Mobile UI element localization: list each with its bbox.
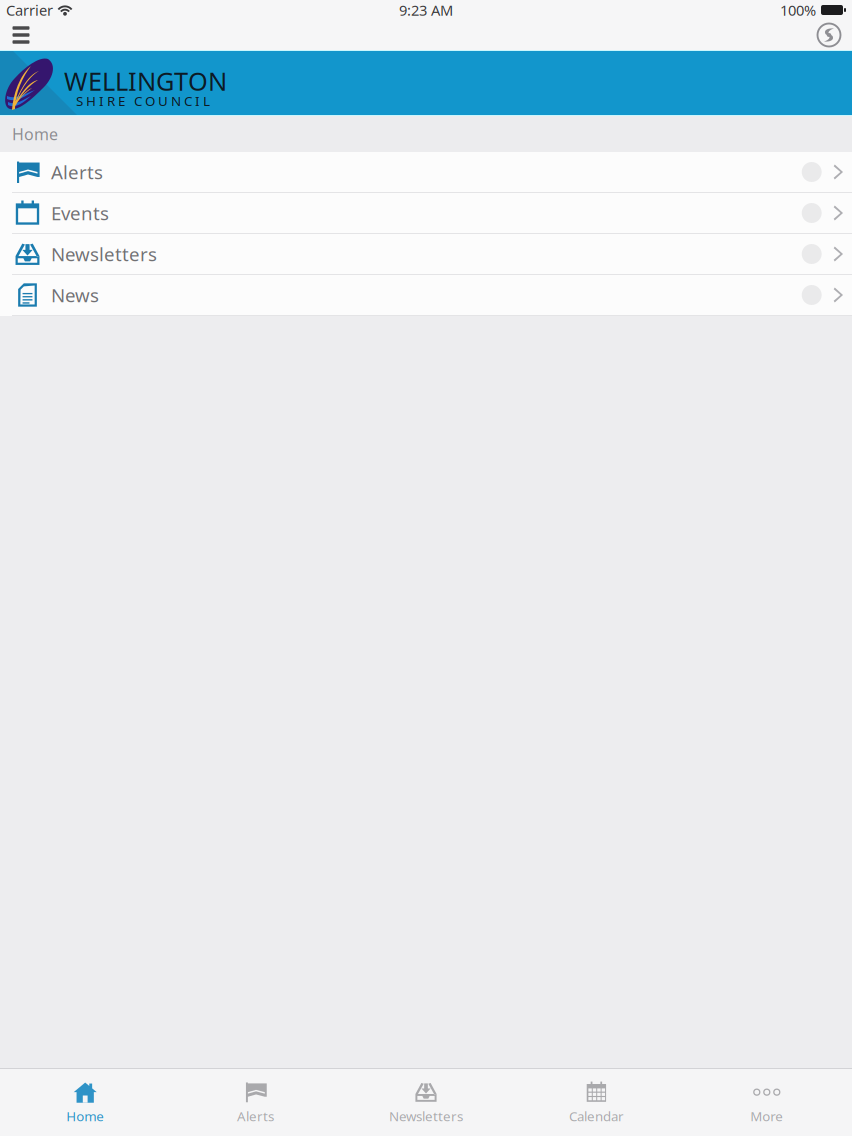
staticText: Calendar bbox=[569, 1107, 624, 1125]
staticText: Alerts bbox=[51, 160, 103, 184]
button[interactable]: Newsletters bbox=[341, 1071, 511, 1133]
staticText: 100% bbox=[780, 0, 816, 20]
button[interactable]: Newsletters bbox=[0, 234, 852, 275]
staticText: Carrier bbox=[6, 0, 53, 20]
button[interactable]: News bbox=[0, 275, 852, 316]
staticText: More bbox=[750, 1107, 783, 1125]
staticText: Home bbox=[12, 123, 58, 145]
button[interactable]: More bbox=[682, 1071, 852, 1133]
button[interactable]: Menu bbox=[0, 20, 36, 50]
button[interactable]: Calendar bbox=[511, 1071, 682, 1133]
button[interactable]: Share bbox=[814, 20, 852, 50]
button[interactable]: Events bbox=[0, 193, 852, 234]
staticText: Alerts bbox=[237, 1107, 274, 1125]
button[interactable]: Home bbox=[0, 1071, 170, 1133]
button[interactable]: Alerts bbox=[170, 1071, 341, 1133]
button[interactable]: Alerts bbox=[0, 152, 852, 193]
staticText: WELLINGTON bbox=[64, 64, 227, 98]
staticText: News bbox=[51, 283, 99, 307]
staticText: Home bbox=[66, 1107, 104, 1125]
staticText: S H I R E C O U N C I L bbox=[76, 92, 210, 110]
staticText: Newsletters bbox=[389, 1107, 463, 1125]
staticText: 9:23 AM bbox=[399, 0, 453, 20]
staticText: Newsletters bbox=[51, 242, 157, 266]
staticText: Events bbox=[51, 201, 109, 225]
